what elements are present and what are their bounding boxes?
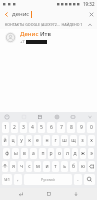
button[interactable]: !#1 [2,174,12,185]
button[interactable]: 0 [87,122,95,133]
button[interactable]: м [34,161,41,172]
button[interactable]: ш [61,135,68,146]
staticText: т [54,163,57,170]
staticText: у [20,137,23,144]
button[interactable]: Settings [53,113,61,121]
staticText: 7 [60,124,63,131]
button[interactable]: я [10,161,16,172]
button[interactable]: 6 [47,122,55,133]
button[interactable]: р [48,148,54,159]
button[interactable]: 2 [11,122,18,133]
staticText: 6 [50,124,53,131]
button[interactable]: . [74,174,82,185]
staticText: ч [20,163,23,170]
button[interactable]: о [56,148,62,159]
staticText: х [90,137,93,144]
button[interactable]: щ [70,135,77,146]
button[interactable]: ч [18,161,24,172]
button[interactable]: т [52,161,59,172]
button[interactable]: 1 [2,122,9,133]
button[interactable]: Русский [24,174,72,185]
button[interactable]: 7 [57,122,65,133]
staticText: Денис [20,30,39,38]
button[interactable]: Back [0,8,12,20]
staticText: э [90,150,93,157]
button[interactable]: Clear [85,8,97,20]
button[interactable]: Shift [2,161,8,172]
staticText: с [28,163,31,170]
staticText: л [66,150,69,157]
staticText: 0 [90,124,93,131]
staticText: р [49,150,53,157]
staticText: 2 [13,124,16,131]
button[interactable]: Home [43,188,55,200]
staticText: 1 [4,124,7,131]
button[interactable]: денис [12,10,85,18]
staticText: , [17,176,19,183]
button[interactable]: и [43,161,50,172]
button[interactable]: КОНТАКТЫ GOOGLE (ALEX972... НАЙДЕНО 1 [0,20,97,29]
staticText: ц [11,137,15,144]
button[interactable]: х [88,135,95,146]
staticText: 4 [31,124,34,131]
button[interactable]: Recents [15,188,27,200]
button[interactable]: Hide keyboard [70,188,82,200]
button[interactable]: з [79,135,86,146]
staticText: 8 [70,124,73,131]
button[interactable]: 5 [38,122,45,133]
button[interactable]: ц [10,135,16,146]
staticText: д [73,150,77,157]
button[interactable]: 9 [77,122,85,133]
button[interactable]: а [30,148,37,159]
button[interactable]: 3 [20,122,27,133]
button[interactable]: в [21,148,28,159]
button[interactable]: й [2,135,8,146]
staticText: е [36,137,39,144]
button[interactable]: More [86,113,94,121]
button[interactable]: е [34,135,41,146]
staticText: ш [62,137,67,144]
button[interactable]: Backspace [88,161,95,172]
button[interactable]: л [64,148,70,159]
button[interactable]: г [52,135,59,146]
button[interactable]: Search [84,174,95,185]
button[interactable]: Clipboard [36,113,44,121]
button[interactable]: у [18,135,24,146]
staticText: а [32,150,35,157]
staticText: ь [63,163,66,170]
staticText: . [77,176,79,183]
button[interactable]: Keyboard mode [69,113,77,121]
button[interactable]: б [70,161,77,172]
staticText: ы [14,150,18,157]
staticText: КОНТАКТЫ GOOGLE (ALEX972... НАЙДЕНО 1 [5,22,83,27]
button[interactable]: к [26,135,32,146]
staticText: 5 [40,124,43,131]
staticText: 3 [22,124,25,131]
button[interactable]: , [14,174,22,185]
staticText: з [81,137,84,144]
button[interactable]: п [39,148,46,159]
staticText: и [45,163,49,170]
staticText: Итв [40,30,51,38]
staticText: п [41,150,45,157]
staticText: м [36,163,40,170]
button[interactable]: э [88,148,94,159]
button[interactable]: 8 [67,122,75,133]
staticText: 9 [80,124,83,131]
button[interactable]: д [72,148,78,159]
button[interactable]: ф [3,148,10,159]
button[interactable]: ж [80,148,86,159]
button[interactable]: ь [61,161,68,172]
button[interactable]: Денис [0,29,97,45]
button[interactable]: с [26,161,32,172]
button[interactable]: Emoji [3,113,11,121]
staticText: й [3,137,7,144]
button[interactable]: ю [79,161,86,172]
staticText: к [28,137,31,144]
staticText: !#1 [4,177,10,182]
button[interactable]: ы [12,148,19,159]
button[interactable]: н [43,135,50,146]
staticText: Русский [41,177,55,182]
button[interactable]: 4 [29,122,36,133]
